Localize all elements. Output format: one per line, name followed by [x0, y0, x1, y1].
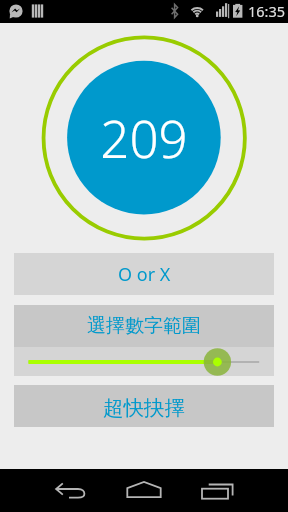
- button[interactable]: 超快抉擇: [14, 385, 274, 427]
- button[interactable]: O or X: [14, 253, 274, 295]
- staticText: O or X: [118, 262, 171, 287]
- button[interactable]: Back: [35, 469, 107, 512]
- staticText: 16:35: [248, 1, 286, 21]
- staticText: 選擇數字範圍: [87, 314, 201, 338]
- staticText: 超快抉擇: [103, 395, 185, 421]
- button[interactable]: 選擇數字範圍: [14, 305, 274, 376]
- button[interactable]: Recent apps: [181, 469, 253, 512]
- staticText: 209: [100, 103, 188, 165]
- button[interactable]: Home: [108, 469, 180, 512]
